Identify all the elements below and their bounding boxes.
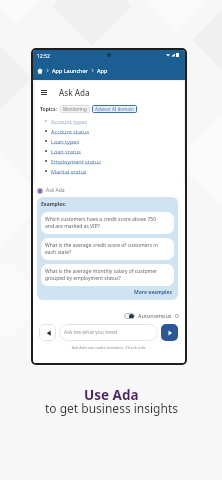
button[interactable]: Employment status [35,156,184,166]
staticText: Use Ada [84,386,139,404]
button[interactable]: Advisor AI domain [92,105,137,113]
staticText: Marital status [51,168,87,175]
staticText: 12:52 [37,53,50,60]
staticText: Loan status [51,148,81,155]
staticText: App Launcher [52,67,88,74]
staticText: Ask Ada [46,187,65,194]
button[interactable]: Autonomous [124,312,172,319]
button[interactable]: Menu [37,86,50,99]
button[interactable]: Marital status [35,166,184,176]
staticText: Employment status [51,158,101,165]
staticText: Account types [51,118,88,125]
staticText: What is the average monthly salary of cu… [45,268,158,282]
staticText: Autonomous [138,312,172,319]
staticText: Account status [51,128,90,135]
button[interactable]: App Launcher [52,67,88,74]
button[interactable]: Which customers have a credit score abov… [41,212,174,234]
staticText: Ask me what you need [64,329,118,336]
staticText: What is the average credit score of cust… [45,242,158,256]
button[interactable]: Monitoring [60,105,90,113]
staticText: Which customers have a credit score abov… [45,216,157,230]
button[interactable]: Ask me what you need [59,324,158,341]
button[interactable]: Voice input [39,324,56,341]
button[interactable]: Home [37,68,43,74]
button[interactable]: Loan status [35,146,184,156]
staticText: Examples: [41,201,67,208]
button[interactable]: Account status [35,126,184,136]
staticText: Advisor AI domain [95,106,134,112]
button[interactable]: What is the average monthly salary of cu… [41,264,174,286]
staticText: Ask Ada [59,87,90,98]
button[interactable]: Send [161,324,178,341]
staticText: Loan types [51,138,80,145]
staticText: App [97,67,108,74]
staticText: Topics: [40,106,57,113]
button[interactable]: Loan types [35,136,184,146]
staticText: Monitoring [63,106,87,112]
staticText: to get business insights [45,400,178,416]
button[interactable]: What is the average credit score of cust… [41,238,174,260]
button[interactable]: More examples [134,289,174,296]
button[interactable]: Account types [35,116,184,126]
staticText: More examples [134,289,173,296]
staticText: Ask Ada can make mistakes. Check info. [33,345,185,350]
